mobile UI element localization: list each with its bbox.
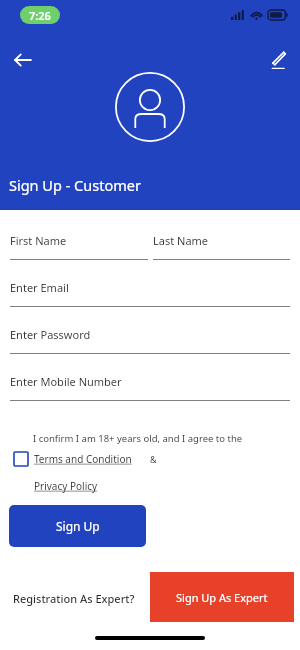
button[interactable]: Edit [265,46,291,72]
staticText: Enter Mobile Number [10,374,122,389]
staticText: Sign Up - Customer [9,175,141,195]
button[interactable]: Sign Up [9,505,146,547]
staticText: Terms and Condition [34,452,132,466]
button[interactable]: Back [9,46,37,74]
button[interactable]: Enter Password [10,327,290,354]
staticText: 7:26 [29,8,51,23]
staticText: Enter Password [10,327,91,342]
staticText: Sign Up [56,518,100,534]
button[interactable]: Last Name [153,233,290,260]
other: Accept terms checkbox [14,452,28,466]
staticText: I confirm I am 18+ years old, and I agre… [33,432,243,445]
staticText: Last Name [153,233,209,248]
staticText: Enter Email [10,280,69,295]
staticText: & [150,453,157,465]
button[interactable]: Privacy Policy [34,479,98,493]
button[interactable]: Sign Up As Expert [150,572,294,622]
button[interactable]: Accept terms checkbox [14,452,157,466]
button[interactable]: First Name [10,233,148,260]
button[interactable]: Enter Email [10,280,290,307]
staticText: Registration As Expert? [13,591,135,606]
staticText: Sign Up As Expert [176,590,268,605]
staticText: First Name [10,233,67,248]
button[interactable]: Enter Mobile Number [10,374,290,401]
